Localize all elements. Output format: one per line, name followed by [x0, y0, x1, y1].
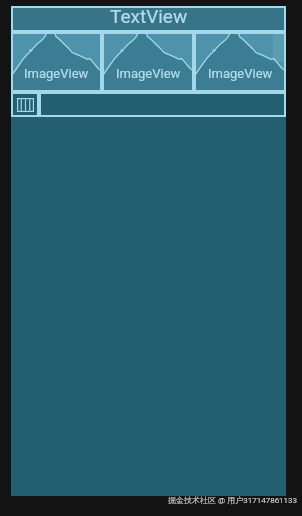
button[interactable]: ImageView [102, 32, 194, 92]
button[interactable]: ImageView [194, 32, 286, 92]
button[interactable] [39, 92, 286, 117]
button[interactable]: ImageView [11, 32, 102, 92]
staticText: ImageView [24, 66, 89, 81]
staticText: ImageView [116, 66, 181, 81]
staticText: ImageView [208, 66, 273, 81]
button[interactable]: TextView [11, 6, 286, 32]
staticText: 掘金技术社区 @ 用户317147861133 [168, 495, 298, 505]
staticText: TextView [110, 5, 188, 27]
button[interactable]: Image placeholder [11, 92, 39, 117]
